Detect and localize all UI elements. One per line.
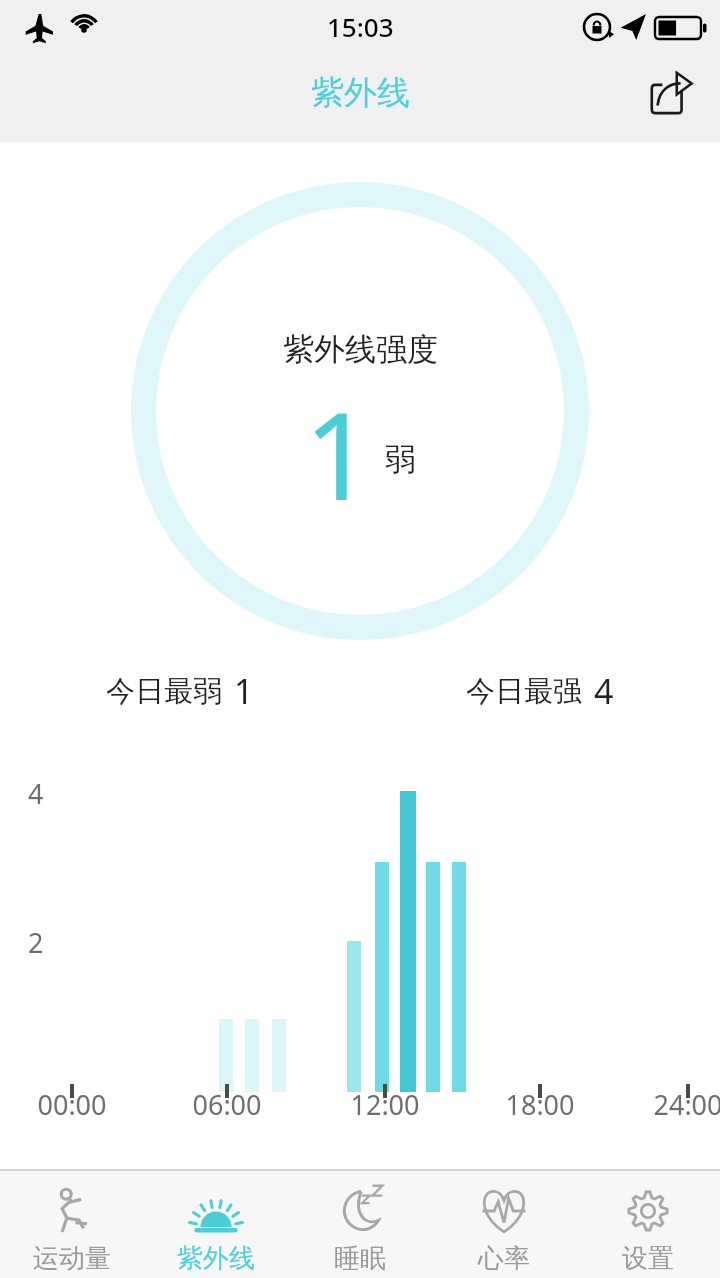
button[interactable]: Share	[640, 62, 702, 124]
staticText: 1	[304, 372, 373, 535]
staticText: 1	[234, 668, 254, 714]
staticText: 运动量	[33, 1242, 111, 1275]
staticText: 紫外线	[177, 1242, 255, 1275]
staticText: 12:00	[350, 1086, 420, 1123]
staticText: 紫外线	[311, 72, 410, 114]
staticText: 15:03	[327, 9, 394, 44]
staticText: 2	[28, 924, 44, 961]
staticText: 今日最强	[466, 673, 582, 710]
button[interactable]: 心率	[432, 1171, 576, 1278]
staticText: 24:00	[653, 1086, 720, 1123]
staticText: 睡眠	[334, 1242, 386, 1275]
button[interactable]: 紫外线	[144, 1171, 288, 1278]
staticText: 18:00	[505, 1086, 575, 1123]
button[interactable]: 睡眠	[288, 1171, 432, 1278]
staticText: 06:00	[192, 1086, 262, 1123]
button[interactable]: 运动量	[0, 1171, 144, 1278]
staticText: 4	[594, 668, 614, 714]
staticText: 心率	[478, 1242, 530, 1275]
staticText: 紫外线强度	[283, 330, 438, 369]
staticText: 设置	[622, 1242, 674, 1275]
staticText: 弱	[385, 440, 416, 479]
staticText: 4	[28, 775, 44, 812]
staticText: 00:00	[37, 1086, 107, 1123]
button[interactable]: 设置	[576, 1171, 720, 1278]
staticText: 今日最弱	[106, 673, 222, 710]
